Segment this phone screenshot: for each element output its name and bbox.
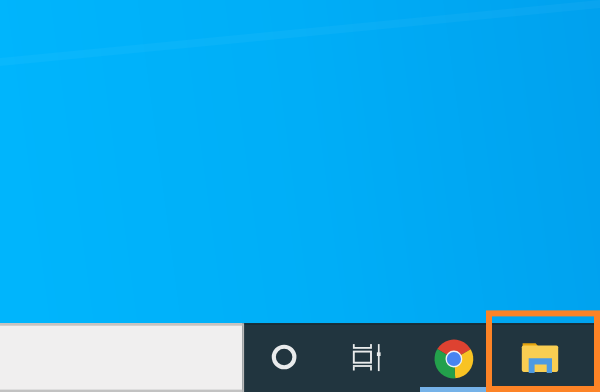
button[interactable]: Google Chrome: [420, 329, 486, 392]
button[interactable]: Task View: [332, 329, 388, 392]
button[interactable]: Type here to search: [0, 323, 243, 392]
button[interactable]: Cortana: [259, 329, 308, 392]
button[interactable]: File Explorer: [492, 329, 558, 392]
